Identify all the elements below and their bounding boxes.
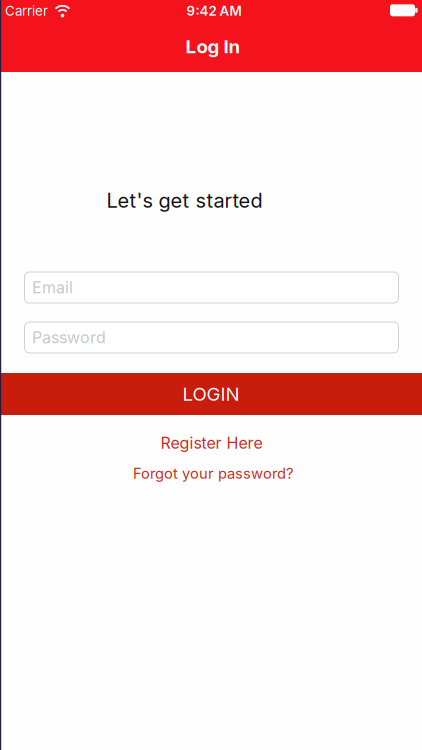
staticText: Log In xyxy=(185,35,240,57)
staticText: Forgot your password? xyxy=(133,465,293,482)
button[interactable]: Forgot your password? xyxy=(133,465,293,482)
staticText: Password xyxy=(32,328,106,347)
button[interactable]: LOGIN xyxy=(0,373,422,415)
staticText: Let's get started xyxy=(106,189,262,212)
button[interactable]: Password xyxy=(24,321,399,353)
staticText: 9:42 AM xyxy=(186,3,241,19)
staticText: Email xyxy=(32,278,73,297)
button[interactable]: Email xyxy=(24,271,399,303)
staticText: LOGIN xyxy=(182,383,239,405)
staticText: Carrier xyxy=(5,3,48,19)
button[interactable]: Register Here xyxy=(160,434,262,452)
staticText: Register Here xyxy=(160,434,262,452)
